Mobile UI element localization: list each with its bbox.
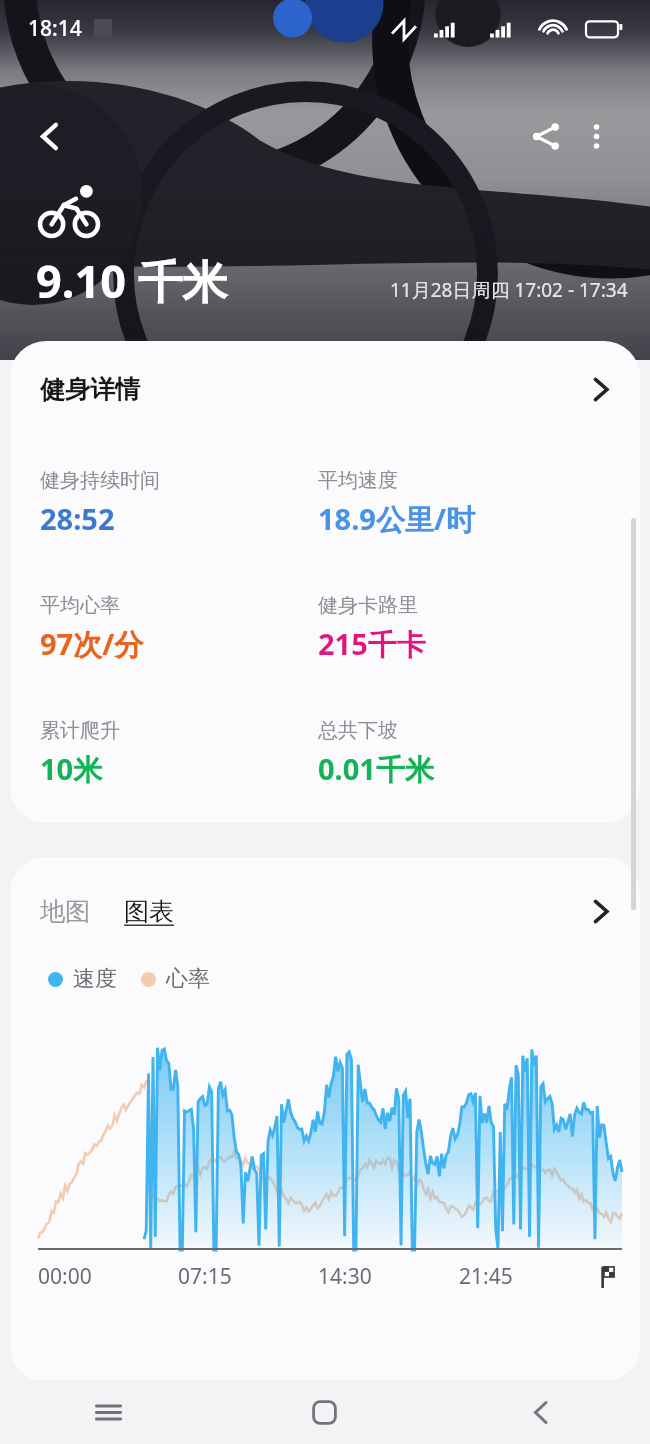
staticText: 18:14 [28,14,82,43]
staticText: 速度 [73,965,117,993]
button[interactable]: Share [518,108,574,164]
staticText: 平均速度 [318,468,398,493]
staticText: 10米 [40,749,103,789]
staticText: 11月28日周四 17:02 - 17:34 [390,277,628,303]
button[interactable]: 健身详情 [10,341,640,437]
staticText: 地图 [40,896,90,927]
staticText: 心率 [166,965,210,993]
staticText: 平均心率 [40,593,120,618]
staticText: 健身卡路里 [318,593,418,618]
staticText: 00:00 [38,1262,92,1291]
staticText: 累计爬升 [40,718,120,743]
staticText: 0.01千米 [318,749,434,789]
staticText: 9.10 千米 [36,250,228,311]
button[interactable]: Home [216,1380,433,1444]
staticText: 21:45 [459,1262,513,1291]
staticText: 健身详情 [40,374,140,405]
staticText: 215千卡 [318,624,426,664]
button[interactable]: Recents [0,1380,216,1444]
staticText: 97次/分 [40,624,144,664]
staticText: 28:52 [40,499,115,538]
button[interactable]: 地图 [10,857,640,965]
staticText: 图表 [124,896,174,927]
staticText: 18.9公里/时 [318,499,475,539]
staticText: 总共下坡 [318,718,398,743]
button[interactable]: Back [433,1380,650,1444]
staticText: 07:15 [178,1262,232,1291]
button[interactable]: More options [568,108,624,164]
staticText: 14:30 [318,1262,372,1291]
staticText: 健身持续时间 [40,468,160,493]
button[interactable]: Back [22,108,78,164]
